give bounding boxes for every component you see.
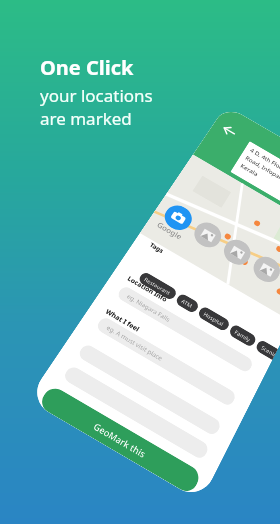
button[interactable]: Photo <box>279 269 280 303</box>
button[interactable]: eg. A must visit place <box>95 315 237 408</box>
button[interactable]: Scenic <box>254 339 278 360</box>
button[interactable]: Photo <box>189 218 226 252</box>
staticText: Hospital <box>202 310 225 327</box>
staticText: Location Info <box>126 274 170 304</box>
staticText: What I feel <box>104 307 142 334</box>
button[interactable]: eg. Niagara Falls <box>116 284 254 374</box>
staticText: Kerala <box>239 162 259 178</box>
button[interactable]: Photo <box>219 235 255 270</box>
staticText: Road, Infopark South... <box>244 154 280 196</box>
button[interactable]: Hospital <box>197 305 231 332</box>
button[interactable] <box>62 364 210 461</box>
staticText: ATM <box>180 297 194 309</box>
staticText: eg. A must visit place <box>105 324 164 363</box>
staticText: Scenic <box>260 344 276 357</box>
staticText: Family <box>234 328 252 343</box>
staticText: Tags <box>148 241 166 255</box>
staticText: eg. Niagara Falls <box>125 292 172 324</box>
button[interactable]: GeoMark this <box>37 384 203 496</box>
staticText: Restaurant <box>143 276 172 296</box>
button[interactable] <box>76 343 222 437</box>
staticText: 4 D, 4th Floor, Chan... <box>248 147 280 185</box>
button[interactable]: Take photo <box>160 201 197 235</box>
staticText: are marked <box>40 107 132 130</box>
staticText: GeoMark this <box>91 420 149 460</box>
button[interactable]: Back <box>220 122 239 140</box>
button[interactable]: Photo <box>249 252 280 287</box>
button[interactable]: Family <box>228 323 258 348</box>
button[interactable]: ATM <box>174 292 200 314</box>
staticText: One Click <box>40 54 134 81</box>
staticText: your locations <box>40 84 153 107</box>
button[interactable]: 4 D, 4th Floor, Chan... <box>230 141 280 231</box>
button[interactable]: Restaurant <box>137 271 178 301</box>
staticText: Google <box>155 219 184 241</box>
